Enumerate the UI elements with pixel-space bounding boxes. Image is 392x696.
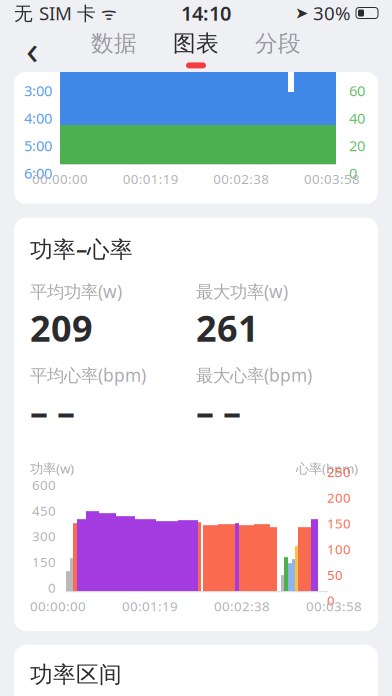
staticText: 3:00 (24, 81, 52, 100)
button[interactable]: 数据 (85, 28, 143, 70)
staticText: 300 (32, 527, 56, 545)
button[interactable]: Back (10, 27, 54, 71)
staticText: 00:03:58 (304, 170, 360, 188)
staticText: 5:00 (24, 136, 52, 155)
staticText: 平均功率(w) (30, 280, 122, 303)
staticText: 00:00:00 (32, 170, 88, 188)
staticText: 40 (349, 108, 365, 128)
staticText: 150 (327, 514, 351, 532)
button[interactable]: 图表 (167, 28, 225, 70)
staticText: 00:03:58 (306, 597, 362, 615)
staticText: 心率(bpm) (296, 459, 358, 477)
staticText: 200 (327, 489, 351, 506)
staticText: ‹ (26, 22, 38, 75)
staticText: 图表 (173, 30, 219, 57)
staticText: ᯤ (96, 1, 117, 24)
staticText: 00:00:00 (30, 597, 86, 615)
staticText: 最大心率(bpm) (196, 364, 312, 387)
staticText: 00:02:38 (213, 170, 269, 188)
staticText: 209 (30, 304, 93, 352)
staticText: ➤ (295, 4, 308, 22)
staticText: 2:00 (24, 53, 52, 73)
staticText: 50 (327, 566, 343, 584)
staticText: 14:10 (181, 0, 231, 26)
staticText: 30% (308, 1, 356, 25)
staticText: 0 (327, 592, 335, 609)
staticText: 100 (327, 540, 351, 558)
staticText: 00:01:19 (122, 597, 178, 615)
staticText: 0 (48, 579, 56, 596)
staticText: – – (196, 388, 241, 435)
staticText: 00:01:19 (123, 170, 179, 188)
staticText: 分段 (255, 30, 301, 57)
staticText: 261 (196, 304, 259, 352)
staticText: 150 (32, 553, 56, 571)
staticText: 数据 (91, 30, 137, 57)
staticText: 无 SIM 卡 (14, 1, 96, 25)
staticText: 6:00 (24, 163, 52, 183)
staticText: 20 (349, 136, 365, 155)
staticText: 平均心率(bpm) (30, 364, 146, 387)
staticText: 00:02:38 (214, 597, 270, 615)
staticText: 功率–心率 (30, 234, 133, 264)
staticText: 600 (32, 476, 56, 494)
staticText: 最大功率(w) (196, 280, 288, 303)
staticText: – – (30, 388, 75, 435)
staticText: 功率(w) (30, 459, 74, 477)
staticText: 80 (349, 53, 365, 73)
staticText: 60 (349, 81, 365, 100)
staticText: 250 (327, 463, 351, 481)
button[interactable]: 分段 (249, 28, 307, 70)
staticText: 4:00 (24, 108, 52, 128)
staticText: 0 (349, 163, 357, 183)
staticText: 功率区间 (30, 661, 122, 689)
staticText: 450 (32, 502, 56, 519)
